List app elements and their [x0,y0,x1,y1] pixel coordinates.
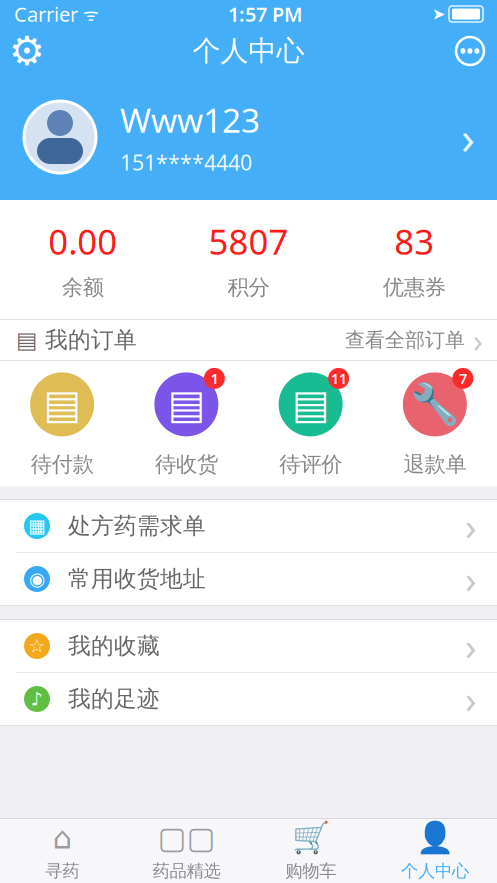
staticText: Carrier [14,1,78,27]
button[interactable]: 🛒 [248,819,373,883]
staticText: 5807 [208,218,288,264]
staticText: ▤ [43,382,81,427]
button[interactable]: ▤ [0,320,497,360]
button[interactable]: ⌂ [0,819,124,883]
button[interactable]: ▤ [124,361,248,486]
staticText: 寻药 [45,860,79,882]
button[interactable]: ◉ [0,553,497,605]
staticText: 1:57 PM [228,1,303,27]
staticText: 👤 [416,820,454,855]
staticText: 待评价 [279,451,342,478]
button[interactable]: ▢▢ [124,819,248,883]
staticText: 1 [210,369,218,388]
staticText: ••• [459,39,480,62]
button[interactable]: 5807 [166,200,331,319]
staticText: › [465,501,477,551]
staticText: ▤ [292,382,330,427]
staticText: ᯤ [78,2,99,25]
staticText: ⌂ [53,820,72,855]
staticText: 积分 [227,274,269,301]
button[interactable]: ♪ [0,673,497,725]
staticText: ➤ [432,5,445,23]
staticText: 11 [331,369,347,388]
staticText: 购物车 [285,860,336,882]
staticText: › [473,319,483,361]
button[interactable]: ▤ [0,361,124,486]
staticText: 🛒 [292,820,330,855]
button[interactable]: 0.00 [0,200,166,319]
staticText: 🔧 [410,381,460,427]
staticText: 我的足迹 [68,685,160,713]
staticText: ▢▢ [157,820,215,855]
staticText: 0.00 [48,218,117,264]
staticText: 查看全部订单 [345,328,465,352]
staticText: 待付款 [31,451,94,478]
staticText: 151****4440 [120,148,252,176]
button[interactable]: 🔧 [373,361,497,486]
button[interactable]: ☆ [0,620,497,672]
button[interactable]: ▤ [248,361,373,486]
staticText: 待收货 [155,451,218,478]
staticText: 处方药需求单 [68,512,206,540]
staticText: 我的收藏 [68,632,160,660]
staticText: 退款单 [403,451,466,478]
staticText: ♪ [31,688,43,710]
staticText: ▦ [28,515,46,537]
staticText: 优惠券 [383,274,446,301]
staticText: › [465,554,477,604]
button[interactable]: Settings [0,28,54,74]
staticText: › [465,621,477,671]
button[interactable]: ▦ [0,500,497,552]
staticText: › [465,674,477,724]
staticText: 个人中心 [192,34,304,68]
staticText: ▤ [167,382,205,427]
staticText: 个人中心 [401,860,469,882]
staticText: 我的订单 [45,326,137,354]
staticText: › [461,107,475,167]
staticText: Www123 [120,98,260,142]
staticText: 83 [394,218,434,264]
staticText: 常用收货地址 [68,565,206,593]
staticText: 药品精选 [152,860,220,882]
button[interactable]: Messages [443,28,497,74]
staticText: ⚙ [9,28,45,74]
button[interactable]: 83 [331,200,497,319]
button[interactable]: 👤 [373,819,497,883]
staticText: ▤ [16,327,37,353]
staticText: 余额 [62,274,104,301]
staticText: ☆ [28,635,45,657]
button[interactable]: Www123 [0,74,497,200]
staticText: ◉ [29,568,45,590]
staticText: 7 [459,369,467,388]
